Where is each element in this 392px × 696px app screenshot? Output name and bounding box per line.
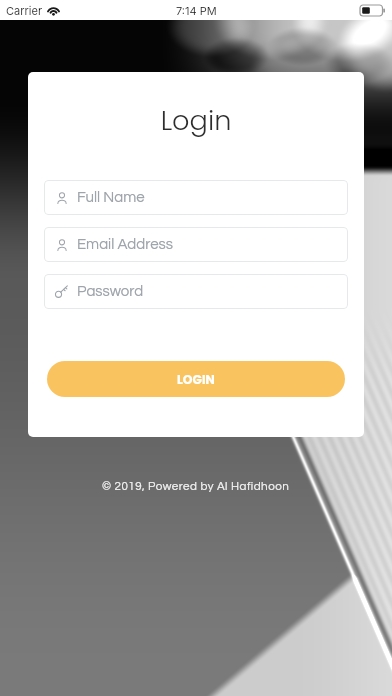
staticText: Full Name xyxy=(77,190,145,205)
button[interactable]: LOGIN xyxy=(47,361,345,397)
staticText: Password xyxy=(77,284,144,299)
button[interactable]: Full Name xyxy=(44,180,348,215)
staticText: © 2019, Powered by Al Hafidhoon xyxy=(102,480,290,492)
staticText: Email Address xyxy=(77,237,173,252)
button[interactable]: Password xyxy=(44,274,348,309)
staticText: Login xyxy=(44,101,348,139)
button[interactable]: Email Address xyxy=(44,227,348,262)
staticText: 7:14 PM xyxy=(176,4,217,17)
staticText: Carrier xyxy=(6,4,43,17)
staticText: LOGIN xyxy=(177,371,215,388)
